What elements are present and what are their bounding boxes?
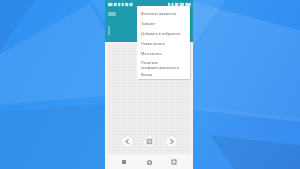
staticText: Политика конфиденциальности bbox=[141, 60, 179, 70]
button[interactable]: Back bbox=[119, 157, 129, 167]
button[interactable]: Политика конфиденциальности bbox=[137, 58, 190, 71]
button[interactable]: Next page bbox=[165, 135, 178, 148]
staticText: Выход bbox=[141, 72, 153, 77]
staticText: Мои записи bbox=[141, 51, 162, 56]
button[interactable]: Pages bbox=[143, 135, 156, 148]
staticText: Новая запись bbox=[141, 41, 165, 46]
button[interactable]: Previous page bbox=[121, 135, 134, 148]
staticText: Тайминг bbox=[141, 21, 156, 26]
button[interactable]: Новая запись bbox=[137, 38, 190, 48]
button[interactable]: Тайминг bbox=[137, 18, 190, 28]
staticText: Добавить в избранное bbox=[141, 31, 181, 36]
staticText: Включить движение bbox=[141, 11, 177, 16]
button[interactable]: Recents bbox=[169, 157, 179, 167]
button[interactable]: Мои записи bbox=[137, 48, 190, 58]
button[interactable]: Home bbox=[144, 157, 154, 167]
button[interactable]: Menu bbox=[108, 12, 116, 16]
button[interactable]: Включить движение bbox=[137, 8, 190, 18]
button[interactable]: Выход bbox=[137, 71, 190, 77]
button[interactable]: Добавить в избранное bbox=[137, 28, 190, 38]
